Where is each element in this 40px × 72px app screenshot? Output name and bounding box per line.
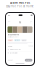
staticText: Ready? [8, 59, 14, 61]
staticText: Learn Hot Pot [10, 1, 30, 4]
button[interactable]: Save [29, 20, 32, 24]
staticText: 9:41 [7, 14, 10, 16]
staticText: Sichuan Hot Pot [8, 34, 20, 36]
staticText: Save [29, 20, 32, 24]
staticText: Slice meat thin [10, 52, 18, 54]
button[interactable]: Broth [14, 39, 20, 41]
staticText: Easy [22, 39, 26, 41]
staticText: Simmer the broth [10, 49, 21, 50]
button[interactable]: Simmer the broth [8, 48, 32, 51]
staticText: Back [7, 20, 10, 24]
staticText: Spicy [8, 39, 12, 41]
button[interactable]: Slice meat thin [8, 51, 32, 54]
button[interactable]: Start [25, 59, 32, 62]
staticText: Hot Pot [18, 20, 21, 24]
staticText: Steps [8, 45, 13, 47]
staticText: Start [26, 59, 31, 61]
button[interactable]: Easy [21, 39, 27, 41]
staticText: Easy Hot Pot at Home [6, 4, 34, 8]
button[interactable]: Back [7, 20, 10, 24]
staticText: Broth [15, 39, 20, 41]
staticText: 45 min · Serves 4 [8, 36, 19, 38]
button[interactable]: Spicy [8, 39, 13, 41]
